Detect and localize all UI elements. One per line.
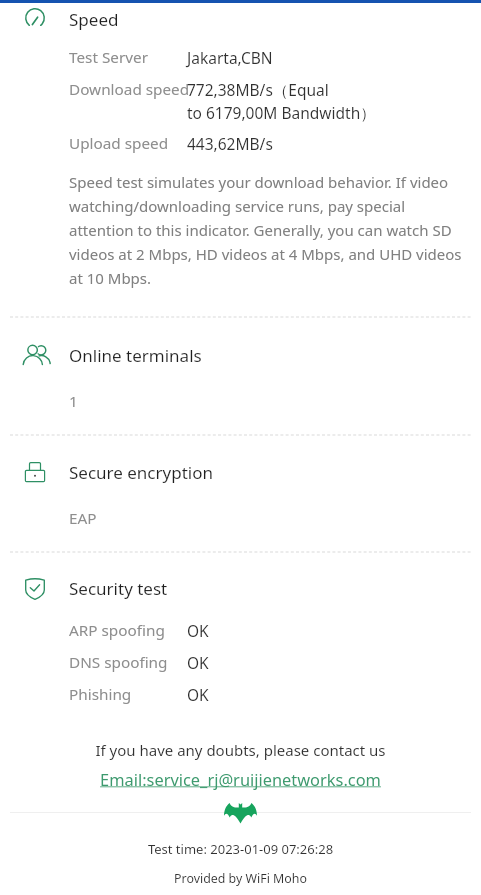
staticText: Provided by WiFi Moho bbox=[0, 870, 481, 887]
staticText: OK bbox=[187, 684, 209, 705]
staticText: Secure encryption bbox=[69, 461, 213, 484]
staticText: ARP spoofing bbox=[69, 620, 165, 641]
staticText: Download speed bbox=[69, 79, 190, 100]
staticText: Speed test simulates your download behav… bbox=[69, 172, 465, 288]
staticText: Upload speed bbox=[69, 133, 169, 154]
button[interactable]: Email:service_rj@ruijienetworks.com bbox=[0, 768, 481, 790]
staticText: 1 bbox=[69, 391, 78, 412]
staticText: EAP bbox=[69, 508, 97, 529]
staticText: Security test bbox=[69, 577, 168, 600]
staticText: 443,62MB/s bbox=[187, 133, 273, 154]
staticText: Speed bbox=[69, 8, 119, 31]
staticText: If you have any doubts, please contact u… bbox=[0, 740, 481, 760]
staticText: OK bbox=[187, 620, 209, 641]
staticText: 772,38MB/s（Equal to 6179,00M Bandwidth） bbox=[187, 79, 376, 124]
staticText: OK bbox=[187, 652, 209, 673]
staticText: Phishing bbox=[69, 684, 132, 705]
staticText: Jakarta,CBN bbox=[187, 47, 273, 68]
staticText: DNS spoofing bbox=[69, 652, 168, 673]
staticText: Online terminals bbox=[69, 344, 202, 367]
staticText: Test time: 2023-01-09 07:26:28 bbox=[0, 840, 481, 858]
staticText: Test Server bbox=[69, 47, 148, 68]
